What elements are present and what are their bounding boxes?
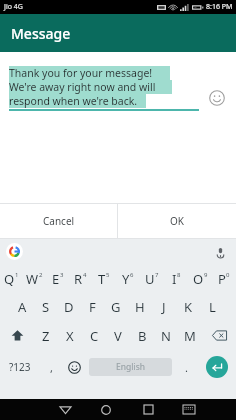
staticText: 2 <box>39 271 43 279</box>
staticText: Y <box>122 270 130 288</box>
staticText: F <box>89 298 96 316</box>
button[interactable]: P <box>212 264 236 293</box>
staticText: Z <box>42 327 50 345</box>
button[interactable]: K <box>176 293 200 321</box>
staticText: respond when we're back. <box>9 94 138 108</box>
button[interactable]: Y <box>116 264 140 293</box>
staticText: 6 <box>130 271 134 279</box>
button[interactable]: L <box>200 293 224 321</box>
button[interactable]: G <box>104 293 128 321</box>
staticText: 9 <box>204 271 208 279</box>
staticText: L <box>209 298 216 316</box>
staticText: G <box>111 298 121 316</box>
button[interactable]: F <box>80 293 104 321</box>
staticText: OK <box>170 214 184 228</box>
button[interactable]: Home <box>93 399 119 420</box>
staticText: 8:16 PM <box>206 2 233 12</box>
button[interactable]: Voice input <box>212 244 228 260</box>
staticText: I <box>172 270 177 288</box>
staticText: 8 <box>177 271 181 279</box>
staticText: K <box>184 298 193 316</box>
button[interactable]: Enter <box>206 356 228 378</box>
button[interactable]: Cancel <box>0 204 117 238</box>
staticText: We're away right now and will <box>9 80 156 94</box>
staticText: E <box>52 270 60 288</box>
staticText: S <box>42 298 50 316</box>
button[interactable]: C <box>82 321 106 350</box>
staticText: U <box>145 270 155 288</box>
staticText: English <box>116 361 145 373</box>
staticText: J <box>162 298 166 316</box>
staticText: W <box>26 270 39 288</box>
button[interactable]: J <box>152 293 176 321</box>
button[interactable]: R <box>69 264 92 293</box>
staticText: H <box>135 298 145 316</box>
staticText: . <box>185 360 188 375</box>
button[interactable]: D <box>57 293 80 321</box>
staticText: ?123 <box>9 360 31 374</box>
staticText: 4 <box>83 271 87 279</box>
staticText: 1 <box>15 271 19 279</box>
staticText: Message <box>11 24 71 43</box>
staticText: Thank you for your message! <box>9 66 153 80</box>
staticText: 3 <box>60 271 64 279</box>
button[interactable]: ?123 <box>0 350 40 384</box>
staticText: T <box>98 270 106 288</box>
staticText: N <box>161 327 171 345</box>
button[interactable]: W <box>23 264 46 293</box>
staticText: B <box>138 327 147 345</box>
button[interactable]: Z <box>34 321 58 350</box>
button[interactable]: Backspace <box>202 321 236 350</box>
staticText: A <box>18 298 27 316</box>
button[interactable]: Q <box>0 264 23 293</box>
staticText: D <box>64 298 74 316</box>
staticText: R <box>74 270 83 288</box>
staticText: Q <box>4 270 15 288</box>
button[interactable]: . <box>175 350 197 384</box>
button[interactable]: N <box>154 321 178 350</box>
button[interactable]: T <box>92 264 116 293</box>
staticText: 0 <box>226 271 230 279</box>
staticText: C <box>90 327 99 345</box>
staticText: X <box>66 327 74 345</box>
staticText: 7 <box>155 271 159 279</box>
button[interactable]: B <box>130 321 154 350</box>
staticText: 5 <box>106 271 110 279</box>
staticText: P <box>218 270 226 288</box>
staticText: M <box>184 327 196 345</box>
button[interactable]: Insert emoji <box>207 88 227 108</box>
button[interactable]: Recent apps <box>135 399 161 420</box>
button[interactable]: M <box>178 321 202 350</box>
button[interactable]: H <box>128 293 152 321</box>
button[interactable]: S <box>34 293 57 321</box>
staticText: , <box>50 360 53 375</box>
button[interactable]: Hide keyboard <box>176 399 202 420</box>
button[interactable]: Emoji <box>62 350 86 384</box>
button[interactable]: V <box>106 321 130 350</box>
button[interactable]: X <box>58 321 82 350</box>
button[interactable]: Google search <box>6 243 23 260</box>
button[interactable]: OK <box>118 204 236 238</box>
staticText: V <box>114 327 122 345</box>
button[interactable]: A <box>11 293 34 321</box>
button[interactable]: Shift <box>0 321 34 350</box>
button[interactable]: I <box>164 264 188 293</box>
staticText: Jio 4G <box>4 2 23 12</box>
button[interactable]: U <box>140 264 164 293</box>
staticText: Cancel <box>43 214 75 228</box>
button[interactable]: E <box>46 264 69 293</box>
staticText: O <box>193 270 204 288</box>
button[interactable]: English <box>89 358 172 376</box>
button[interactable]: , <box>40 350 62 384</box>
button[interactable]: O <box>188 264 212 293</box>
button[interactable]: Back <box>52 399 78 420</box>
